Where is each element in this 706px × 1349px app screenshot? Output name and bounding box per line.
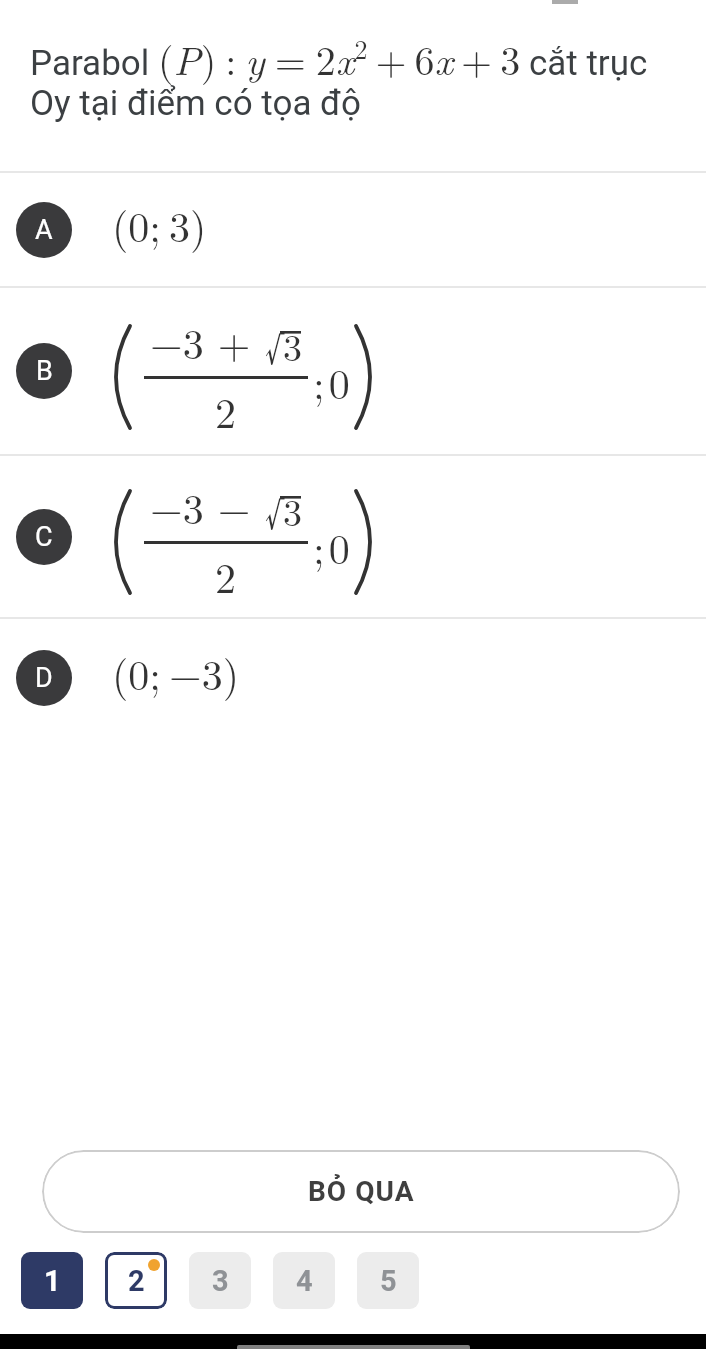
staticText: (0; −3) — [112, 643, 240, 703]
staticText: BỎ QUA — [308, 1175, 415, 1208]
staticText: √3 — [265, 318, 302, 372]
button[interactable]: B — [0, 288, 706, 454]
staticText: 5 — [380, 1264, 397, 1298]
staticText: −3 + — [150, 312, 265, 372]
staticText: Parabol (P) : y = 2x2 + 6x + 3 cắt trục … — [30, 30, 648, 123]
staticText: ; 0 — [313, 352, 350, 412]
staticText: −3 − — [150, 477, 265, 537]
staticText: 4 — [296, 1264, 313, 1298]
button[interactable]: C — [0, 456, 706, 617]
staticText: D — [35, 662, 53, 694]
button[interactable]: 2 — [105, 1252, 167, 1309]
staticText: B — [36, 355, 53, 387]
button[interactable]: 3 — [189, 1252, 251, 1309]
staticText: √3 — [265, 483, 302, 537]
staticText: A — [35, 214, 53, 246]
staticText: 3 — [212, 1264, 229, 1298]
staticText: (0; 3) — [112, 195, 207, 255]
staticText: 2 — [128, 1264, 145, 1298]
button[interactable]: 4 — [273, 1252, 335, 1309]
staticText: 2 — [215, 381, 237, 441]
staticText: 2 — [215, 546, 237, 606]
staticText: 1 — [44, 1264, 61, 1298]
button[interactable]: 1 — [21, 1252, 83, 1309]
button[interactable]: BỎ QUA — [42, 1150, 680, 1233]
button[interactable]: A — [0, 173, 706, 286]
button[interactable]: 5 — [357, 1252, 419, 1309]
button[interactable]: D — [0, 619, 706, 737]
staticText: C — [35, 521, 53, 553]
staticText: ; 0 — [313, 517, 350, 577]
